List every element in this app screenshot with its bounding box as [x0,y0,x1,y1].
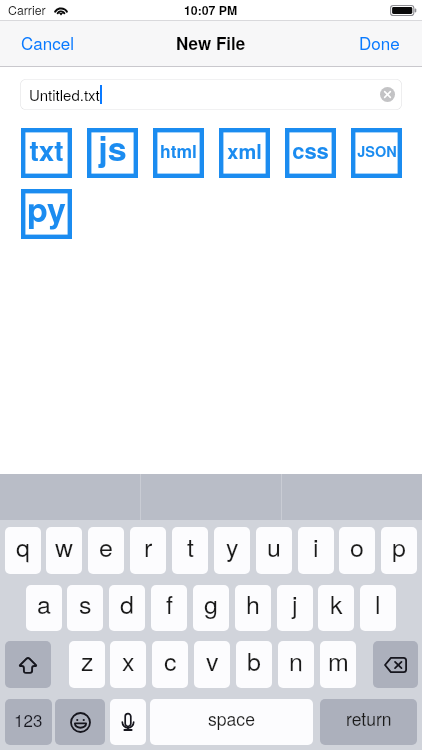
staticText: g [204,585,218,621]
button[interactable]: j [277,585,313,631]
button[interactable]: u [256,527,292,574]
button[interactable]: v [194,641,230,688]
button[interactable]: m [320,641,356,688]
button[interactable]: Dictate [110,699,146,745]
staticText: 123 [14,707,43,731]
staticText: b [247,642,261,678]
button[interactable]: k [318,585,354,631]
button[interactable]: t [172,527,208,574]
staticText: Cancel [21,30,74,53]
button[interactable]: c [152,641,188,688]
staticText: z [81,642,94,678]
button[interactable]: py [21,189,72,239]
staticText: f [166,585,173,621]
button[interactable]: i [298,527,334,574]
button[interactable]: Shift [5,641,51,688]
button[interactable]: z [69,641,105,688]
button[interactable]: js [87,128,138,178]
staticText: n [289,642,303,678]
staticText: x [122,642,135,678]
staticText: Untitled.txt [29,84,100,105]
staticText: m [328,642,349,678]
staticText: t [187,528,194,564]
staticText: w [55,528,74,564]
button[interactable]: Backspace [373,641,418,688]
button[interactable]: o [339,527,375,574]
staticText: r [144,528,153,564]
button[interactable]: Untitled.txt [20,79,402,110]
staticText: New File [176,31,246,55]
staticText: html [160,138,197,163]
button[interactable]: r [130,527,166,574]
staticText: p [392,528,406,564]
staticText: Carrier [8,1,46,19]
staticText: u [267,528,281,564]
button[interactable]: l [360,585,396,631]
staticText: d [120,585,134,621]
button[interactable]: txt [21,128,72,178]
staticText: py [27,184,66,233]
button[interactable]: Clear text [380,87,395,102]
button[interactable]: 123 [5,699,52,745]
staticText: js [98,123,127,172]
button[interactable]: s [67,585,103,631]
button[interactable]: h [235,585,271,631]
button[interactable]: g [193,585,229,631]
button[interactable]: css [285,128,336,178]
staticText: j [292,585,298,621]
staticText: q [16,528,30,564]
button[interactable]: f [151,585,187,631]
staticText: xml [227,136,262,165]
staticText: JSON [357,141,397,162]
button[interactable]: Emoji [55,699,105,745]
button[interactable]: return [320,699,417,745]
button[interactable]: space [150,699,313,745]
staticText: 10:07 PM [184,1,238,19]
staticText: c [164,642,177,678]
button[interactable]: a [26,585,62,631]
button[interactable]: d [109,585,145,631]
button[interactable]: e [88,527,124,574]
staticText: e [99,528,113,564]
button[interactable]: w [46,527,82,574]
button[interactable]: b [236,641,272,688]
staticText: i [313,528,319,564]
staticText: l [375,585,381,621]
staticText: h [246,585,260,621]
button[interactable]: xml [219,128,270,178]
staticText: k [330,585,343,621]
button[interactable]: n [278,641,314,688]
button[interactable]: x [110,641,146,688]
staticText: a [37,585,51,621]
staticText: v [206,642,219,678]
staticText: space [208,706,255,731]
button[interactable]: p [381,527,417,574]
button[interactable]: JSON [351,128,402,178]
button[interactable]: q [5,527,41,574]
staticText: css [292,134,329,166]
staticText: s [79,585,92,621]
button[interactable]: Cancel [0,20,90,67]
staticText: y [226,528,239,564]
button[interactable]: y [214,527,250,574]
staticText: txt [29,129,64,169]
staticText: return [346,706,392,731]
button[interactable]: html [153,128,204,178]
staticText: o [350,528,364,564]
staticText: Done [359,30,400,53]
button[interactable]: Done [343,20,422,67]
